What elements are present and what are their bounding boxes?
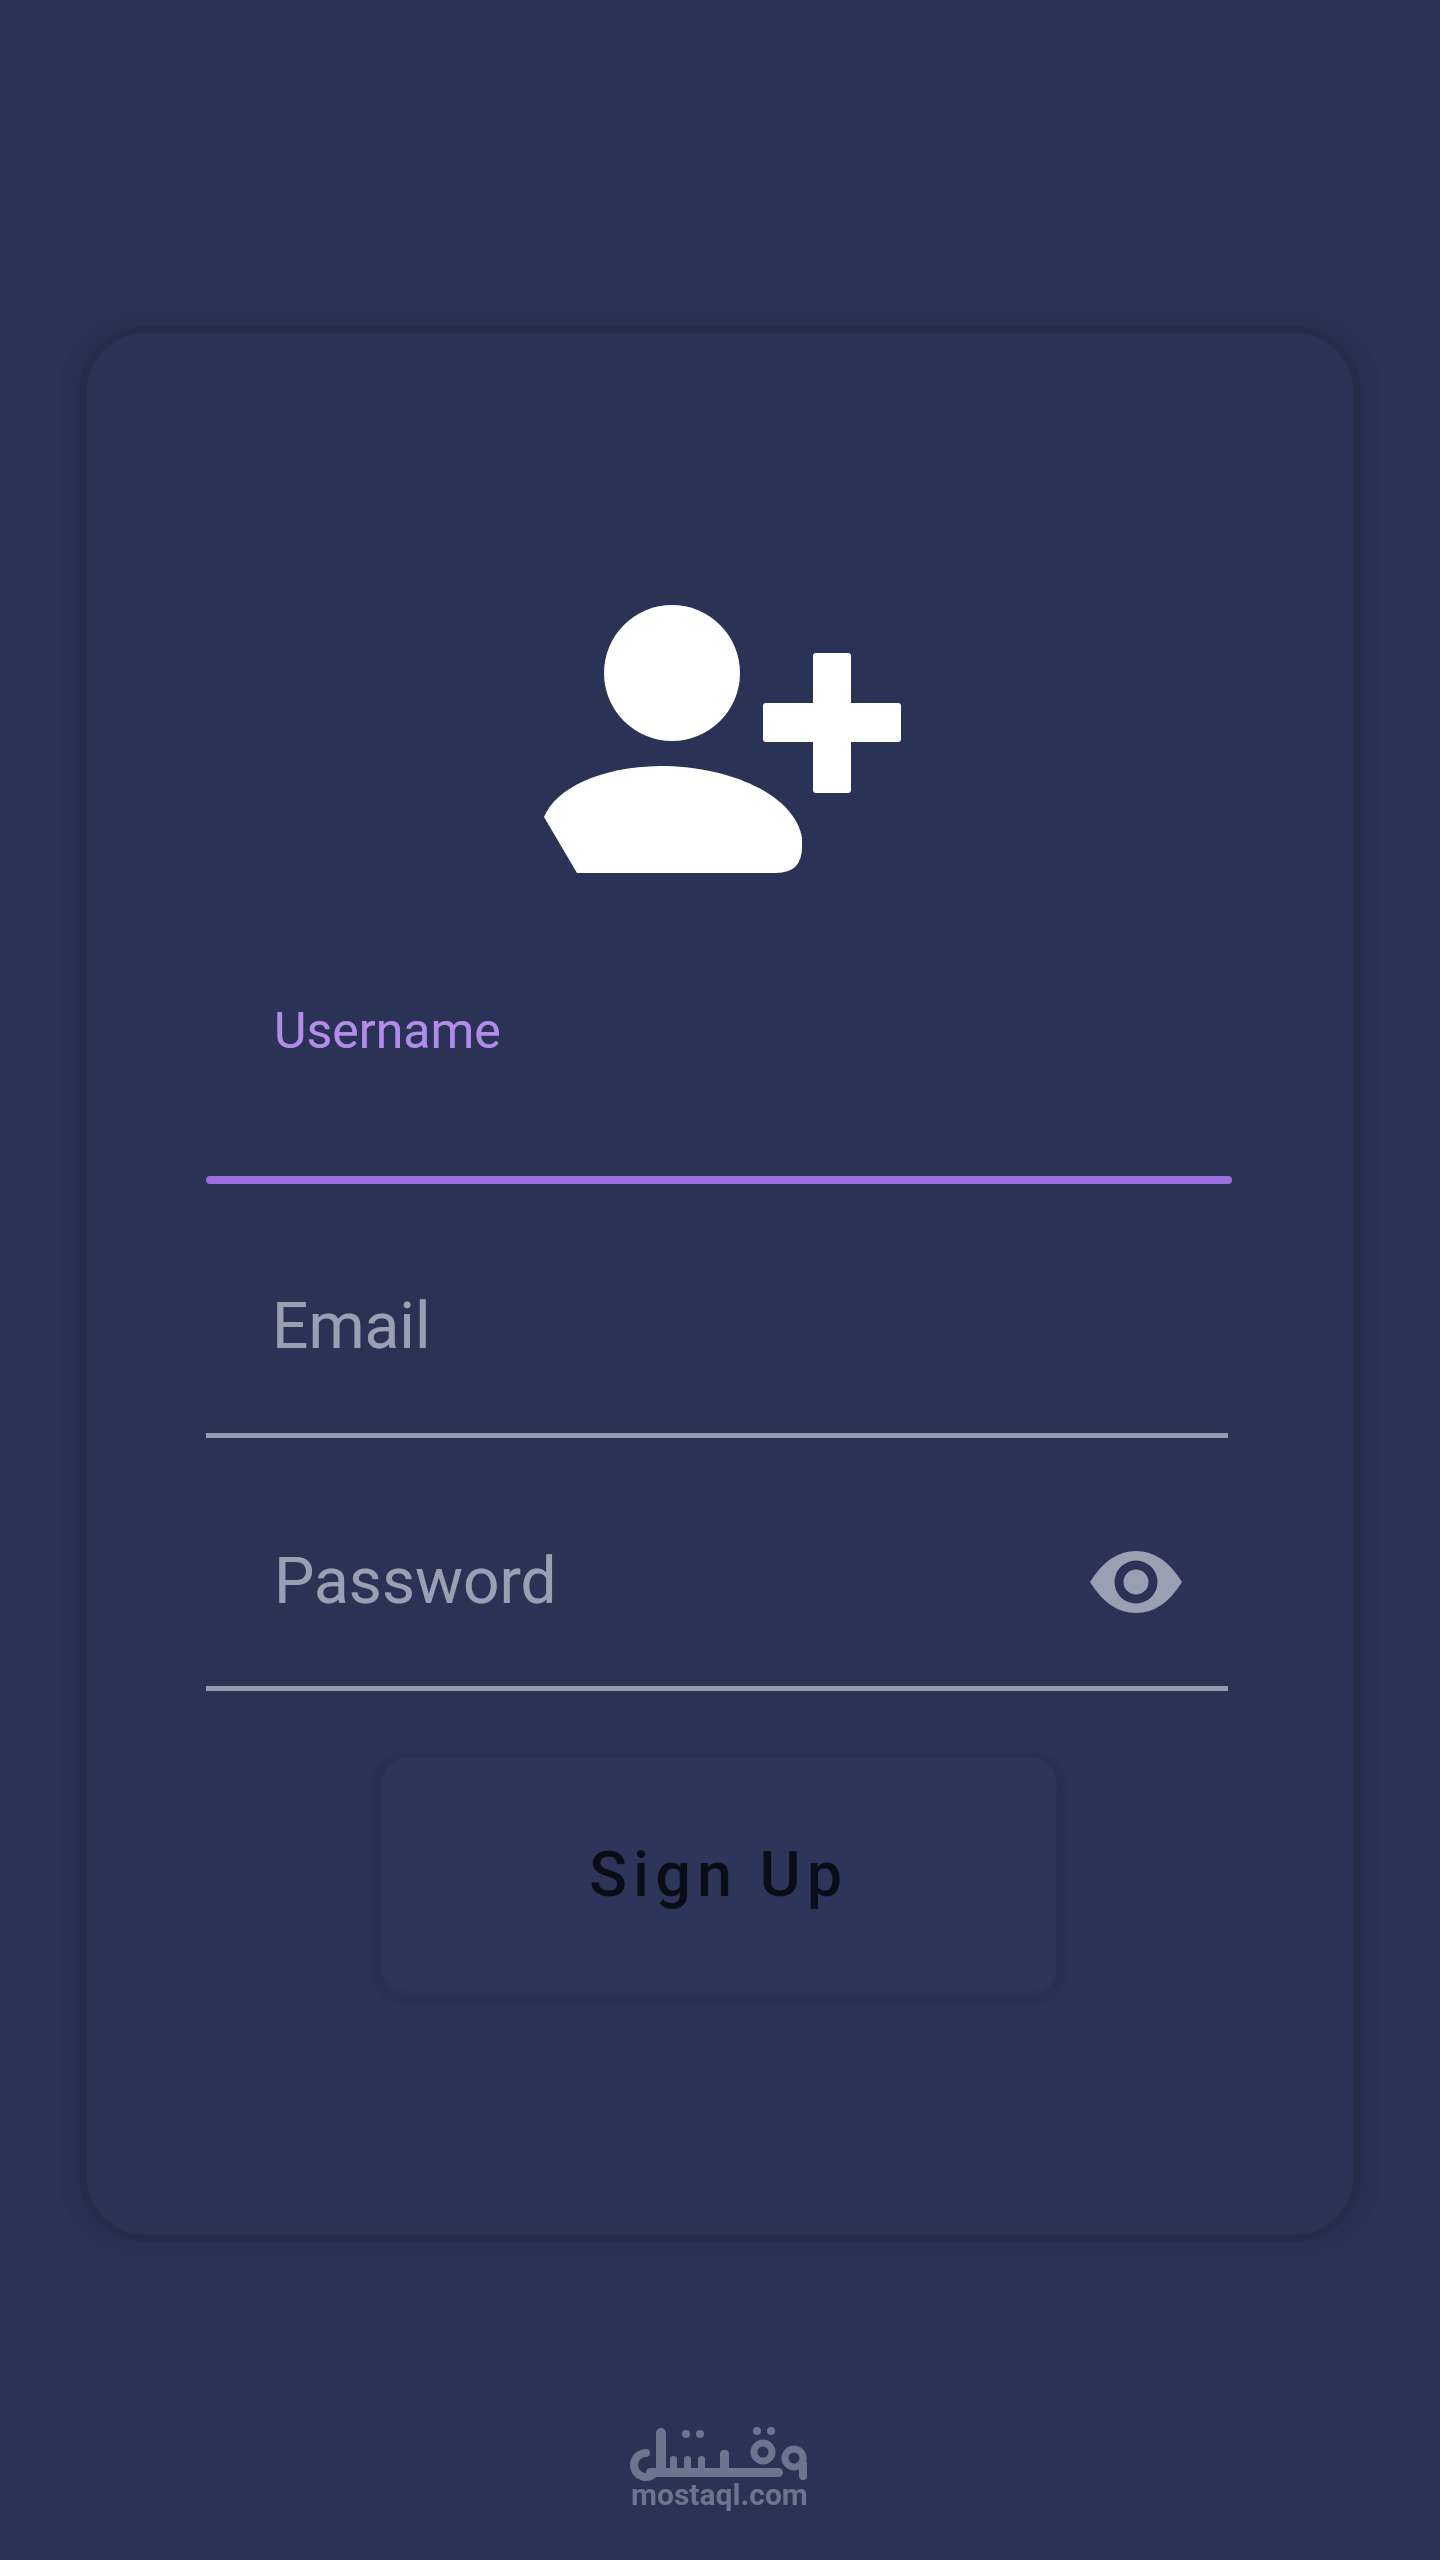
button[interactable]: [206, 990, 1232, 1184]
staticText: mostaql.com: [631, 2477, 808, 2512]
button[interactable]: [206, 1270, 1232, 1438]
button[interactable]: [1080, 1534, 1192, 1630]
button[interactable]: [206, 1525, 1066, 1691]
staticText: Sign Up: [589, 1838, 849, 1912]
staticText: Email: [272, 1289, 431, 1364]
button[interactable]: Sign Up: [382, 1758, 1056, 1991]
staticText: Username: [274, 1002, 501, 1061]
staticText: Password: [274, 1544, 557, 1619]
